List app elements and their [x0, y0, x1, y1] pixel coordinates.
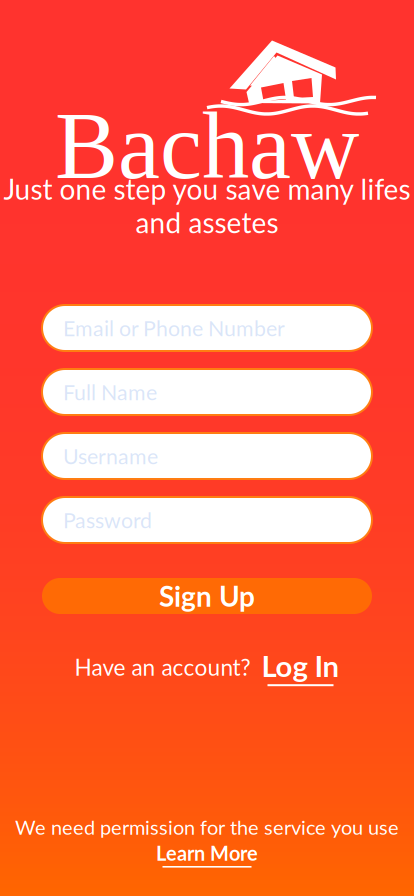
staticText: Just one step you save many lifes	[3, 172, 410, 206]
staticText: We need permission for the service you u…	[15, 815, 399, 839]
staticText: Sign Up	[159, 579, 255, 613]
button[interactable]: Have an account?	[74, 648, 339, 686]
button[interactable]: Learn More	[156, 841, 258, 868]
staticText: Email or Phone Number	[63, 315, 285, 341]
staticText: Full Name	[63, 379, 157, 405]
staticText: Username	[63, 443, 158, 469]
button[interactable]: Password	[42, 497, 372, 543]
staticText: Password	[63, 507, 152, 533]
button[interactable]: Full Name	[42, 369, 372, 415]
staticText: Have an account?	[74, 653, 250, 681]
staticText: and assetes	[135, 206, 278, 239]
staticText: Learn More	[156, 841, 258, 865]
button[interactable]: Sign Up	[42, 578, 372, 614]
button[interactable]: Username	[42, 433, 372, 479]
staticText: Log In	[261, 648, 339, 683]
button[interactable]: Email or Phone Number	[42, 305, 372, 351]
staticText: Bachaw	[55, 94, 359, 198]
